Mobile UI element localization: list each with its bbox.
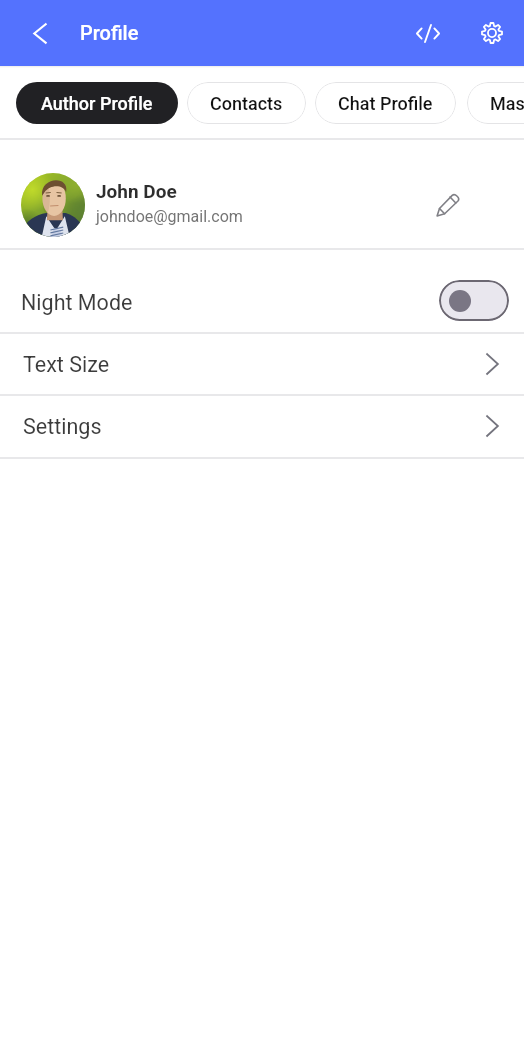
button[interactable]: Author Profile — [16, 82, 178, 124]
button[interactable]: Edit profile — [426, 183, 470, 227]
staticText: Settings — [23, 414, 102, 439]
button[interactable]: Back — [16, 9, 64, 57]
button[interactable]: Night Mode — [0, 249, 524, 332]
staticText: Text Size — [23, 352, 110, 377]
staticText: Night Mode — [21, 290, 133, 315]
button[interactable]: Chat Profile — [315, 82, 456, 124]
button[interactable]: Settings — [468, 9, 516, 57]
staticText: Profile — [80, 21, 139, 44]
button[interactable]: Text Size — [0, 333, 524, 395]
staticText: Chat Profile — [338, 93, 433, 114]
button[interactable]: Contacts — [187, 82, 306, 124]
button[interactable]: Settings — [0, 395, 524, 457]
staticText: John Doe — [96, 180, 177, 202]
button[interactable]: Source code — [404, 9, 452, 57]
button[interactable]: John Doe — [0, 140, 524, 248]
button[interactable]: Mastodon — [467, 82, 524, 124]
staticText: Author Profile — [41, 93, 153, 114]
button[interactable]: Night Mode toggle — [439, 280, 509, 321]
staticText: johndoe@gmail.com — [96, 207, 243, 226]
staticText: Mastodon — [490, 93, 524, 114]
staticText: Contacts — [210, 93, 283, 114]
